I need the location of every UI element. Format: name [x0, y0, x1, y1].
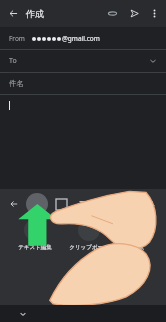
- button[interactable]: Delete: [77, 199, 88, 210]
- button[interactable]: Back: [0, 0, 26, 27]
- button[interactable]: [0, 95, 166, 322]
- button[interactable]: To: [0, 50, 166, 72]
- button[interactable]: Layout: [56, 199, 67, 210]
- staticText: 翻訳: [133, 244, 144, 251]
- staticText: 件名: [9, 79, 24, 88]
- staticText: From: [9, 34, 25, 43]
- button[interactable]: テキスト編集: [18, 219, 52, 251]
- button[interactable]: Back: [4, 194, 24, 214]
- staticText: 作成: [26, 8, 44, 19]
- button[interactable]: Settings: [91, 195, 109, 213]
- staticText: To: [9, 56, 17, 66]
- button[interactable]: 件名: [0, 73, 166, 94]
- button[interactable]: Keyboard: [26, 193, 48, 215]
- button[interactable]: From: [0, 27, 166, 49]
- staticText: @gmail.com: [62, 34, 100, 43]
- button[interactable]: Send: [123, 0, 145, 27]
- staticText: テキスト編集: [18, 244, 52, 251]
- button[interactable]: Voice input: [142, 195, 160, 213]
- button[interactable]: クリップボード: [69, 219, 109, 251]
- button[interactable]: Attach file: [101, 0, 123, 27]
- button[interactable]: Back: [17, 308, 29, 320]
- staticText: クリップボード: [69, 244, 109, 251]
- button[interactable]: 翻訳: [127, 219, 149, 251]
- button[interactable]: フローティング: [62, 261, 105, 294]
- button[interactable]: More options: [145, 0, 163, 27]
